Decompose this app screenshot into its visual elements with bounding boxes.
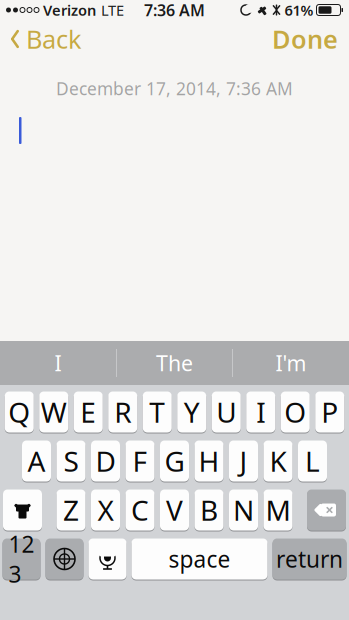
staticText: Z: [63, 491, 79, 529]
button[interactable]: G: [160, 440, 189, 482]
button[interactable]: K: [263, 440, 292, 482]
staticText: T: [149, 393, 165, 431]
button[interactable]: O: [281, 391, 310, 433]
button[interactable]: T: [143, 391, 172, 433]
button[interactable]: M: [263, 489, 292, 531]
button[interactable]: X: [91, 489, 120, 531]
button[interactable]: Z: [56, 489, 85, 531]
staticText: December 17, 2014, 7:36 AM: [56, 77, 293, 100]
staticText: Y: [184, 393, 200, 431]
staticText: E: [80, 393, 96, 431]
staticText: Done: [272, 22, 338, 56]
button[interactable]: C: [125, 489, 154, 531]
button[interactable]: F: [125, 440, 154, 482]
button[interactable]: Back: [0, 16, 92, 62]
staticText: LTE: [101, 0, 124, 20]
staticText: P: [321, 393, 338, 431]
staticText: 123: [8, 529, 34, 589]
staticText: Back: [26, 22, 82, 56]
staticText: D: [95, 442, 115, 480]
staticText: B: [200, 491, 218, 529]
staticText: space: [168, 544, 230, 574]
button[interactable]: B: [194, 489, 223, 531]
staticText: X: [97, 491, 113, 529]
staticText: C: [131, 491, 149, 529]
button[interactable]: E: [74, 391, 103, 433]
staticText: F: [132, 442, 147, 480]
staticText: V: [166, 491, 183, 529]
button[interactable]: I: [246, 391, 275, 433]
button[interactable]: A: [22, 440, 51, 482]
button[interactable]: space: [131, 538, 267, 580]
button[interactable]: V: [160, 489, 189, 531]
button[interactable]: Shift: [3, 489, 42, 531]
staticText: Q: [8, 393, 30, 431]
staticText: 7:36 AM: [144, 0, 205, 21]
button[interactable]: W: [39, 391, 68, 433]
staticText: U: [216, 393, 236, 431]
button[interactable]: R: [108, 391, 137, 433]
button[interactable]: I: [0, 341, 116, 385]
staticText: I: [54, 349, 61, 377]
staticText: return: [276, 544, 343, 574]
button[interactable]: S: [56, 440, 85, 482]
staticText: I: [256, 393, 265, 431]
button[interactable]: Done: [262, 16, 349, 62]
staticText: W: [41, 393, 67, 431]
staticText: O: [284, 393, 306, 431]
button[interactable]: L: [298, 440, 327, 482]
button[interactable]: The: [117, 341, 232, 385]
button[interactable]: P: [315, 391, 344, 433]
button[interactable]: U: [212, 391, 241, 433]
staticText: H: [198, 442, 219, 480]
staticText: G: [164, 442, 184, 480]
button[interactable]: D: [91, 440, 120, 482]
button[interactable]: H: [194, 440, 223, 482]
staticText: Verizon: [43, 0, 96, 20]
button[interactable]: Switch keyboard: [45, 538, 83, 580]
staticText: I'm: [275, 349, 306, 377]
button[interactable]: J: [229, 440, 258, 482]
staticText: M: [265, 491, 290, 529]
staticText: 61%: [284, 0, 313, 20]
staticText: A: [27, 442, 45, 480]
button[interactable]: Q: [5, 391, 34, 433]
staticText: R: [114, 393, 131, 431]
staticText: S: [63, 442, 78, 480]
button[interactable]: 123: [2, 538, 40, 580]
button[interactable]: Dictate: [88, 538, 126, 580]
button[interactable]: return: [272, 538, 346, 580]
staticText: L: [305, 442, 320, 480]
staticText: K: [269, 442, 286, 480]
staticText: The: [156, 349, 193, 377]
staticText: N: [233, 491, 254, 529]
staticText: J: [239, 442, 247, 480]
button[interactable]: N: [229, 489, 258, 531]
button[interactable]: I'm: [233, 341, 349, 385]
button[interactable]: Delete: [307, 489, 346, 531]
button[interactable]: Y: [177, 391, 206, 433]
